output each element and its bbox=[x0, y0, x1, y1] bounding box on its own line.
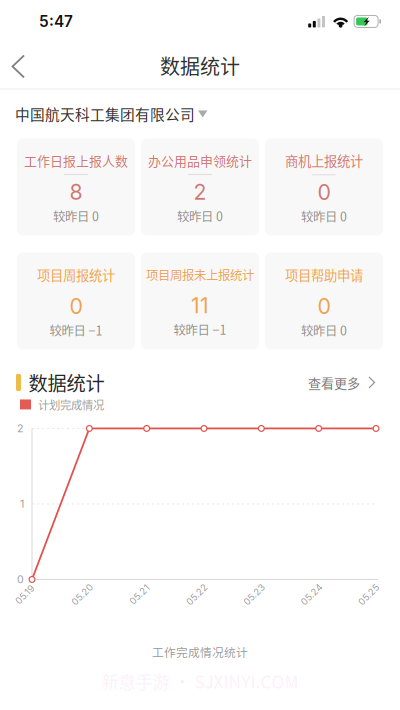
staticText: 计划完成情况 bbox=[38, 396, 104, 413]
staticText: 新意手游 · SJXINYI.COM bbox=[101, 668, 298, 693]
staticText: 0 bbox=[317, 293, 330, 319]
staticText: 商机上报统计 bbox=[285, 151, 363, 170]
button[interactable]: 项目周报统计 bbox=[17, 252, 135, 349]
staticText: 工作完成情况统计 bbox=[152, 643, 248, 660]
staticText: 0 bbox=[69, 293, 82, 319]
staticText: 1 bbox=[20, 497, 24, 510]
staticText: 项目帮助申请 bbox=[285, 265, 363, 284]
staticText: 5:47 bbox=[39, 12, 73, 31]
staticText: 05.22 bbox=[184, 589, 210, 600]
staticText: 05.20 bbox=[69, 589, 95, 600]
staticText: 05.19 bbox=[13, 589, 36, 600]
staticText: 05.21 bbox=[128, 589, 152, 600]
staticText: 05.24 bbox=[299, 589, 325, 600]
staticText: 数据统计 bbox=[28, 369, 104, 396]
staticText: 较昨日 0 bbox=[53, 207, 99, 225]
staticText: 0 bbox=[317, 179, 330, 205]
staticText: 项目周报统计 bbox=[37, 265, 115, 284]
staticText: 0 bbox=[17, 573, 24, 586]
staticText: 较昨日 0 bbox=[301, 321, 347, 339]
button[interactable]: 中国航天科工集团有限公司 bbox=[0, 89, 400, 138]
staticText: 8 bbox=[69, 179, 82, 205]
button[interactable]: 办公用品申领统计 bbox=[141, 138, 259, 235]
button[interactable]: 项目帮助申请 bbox=[265, 252, 383, 349]
staticText: 05.23 bbox=[241, 589, 267, 600]
staticText: 中国航天科工集团有限公司 bbox=[15, 103, 195, 124]
button[interactable]: 工作日报上报人数 bbox=[17, 138, 135, 235]
button[interactable]: 商机上报统计 bbox=[265, 138, 383, 235]
button[interactable]: Back bbox=[0, 38, 39, 86]
button[interactable]: 查看更多 bbox=[308, 369, 400, 395]
staticText: 较昨日 0 bbox=[301, 207, 347, 225]
staticText: 数据统计 bbox=[160, 51, 240, 80]
staticText: 11 bbox=[191, 293, 209, 318]
button[interactable]: 项目周报未上报统计 bbox=[141, 252, 259, 349]
staticText: 较昨日 0 bbox=[177, 207, 223, 225]
staticText: 05.25 bbox=[356, 589, 382, 600]
staticText: 2 bbox=[17, 422, 24, 435]
staticText: 查看更多 bbox=[308, 373, 360, 392]
staticText: 工作日报上报人数 bbox=[24, 151, 128, 170]
staticText: 办公用品申领统计 bbox=[148, 151, 252, 170]
staticText: 较昨日 −1 bbox=[173, 320, 226, 338]
staticText: 2 bbox=[193, 179, 206, 205]
staticText: 项目周报未上报统计 bbox=[146, 266, 254, 284]
staticText: 较昨日 −1 bbox=[49, 321, 102, 339]
